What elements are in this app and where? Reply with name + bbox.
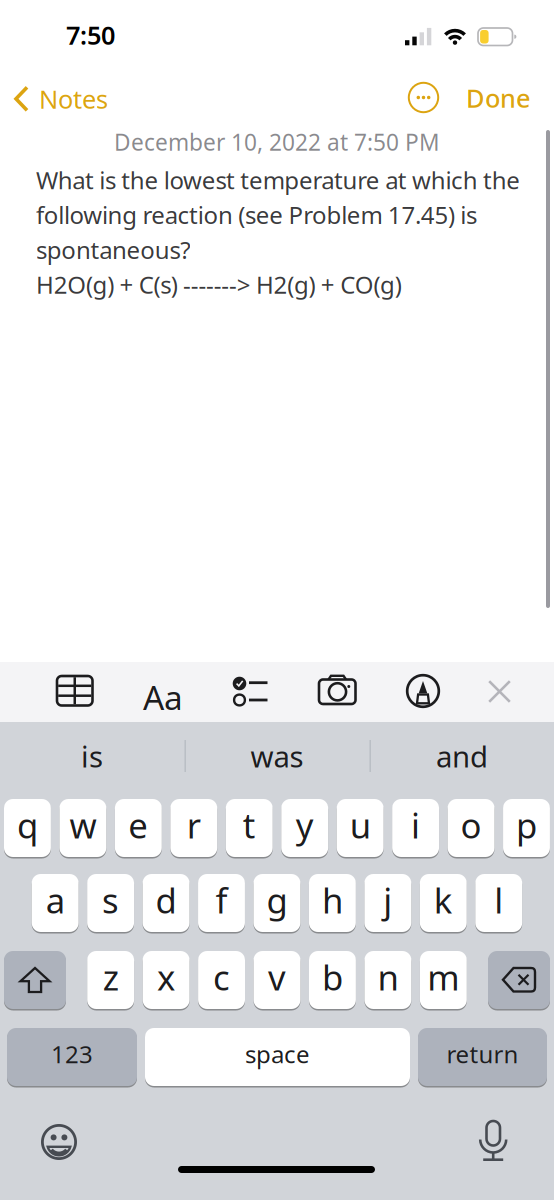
- button[interactable]: q: [4, 799, 51, 857]
- staticText: What is the lowest temperature at which …: [36, 164, 520, 196]
- staticText: p: [516, 802, 537, 848]
- button[interactable]: Dictation: [480, 1121, 507, 1161]
- staticText: y: [296, 802, 314, 848]
- staticText: spontaneous?: [36, 234, 190, 266]
- staticText: c: [213, 954, 230, 1000]
- button[interactable]: x: [143, 951, 190, 1009]
- button[interactable]: i: [392, 799, 439, 857]
- staticText: r: [187, 802, 201, 848]
- button[interactable]: l: [475, 874, 522, 932]
- button[interactable]: c: [198, 951, 245, 1009]
- staticText: k: [434, 877, 453, 923]
- button[interactable]: s: [87, 874, 134, 932]
- staticText: December 10, 2022 at 7:50 PM: [114, 127, 440, 157]
- button[interactable]: Insert table: [57, 676, 92, 705]
- button[interactable]: return: [418, 1028, 547, 1086]
- staticText: f: [215, 877, 227, 923]
- button[interactable]: More: [406, 80, 441, 115]
- button[interactable]: Shift: [4, 951, 66, 1009]
- button[interactable]: e: [115, 799, 162, 857]
- staticText: e: [128, 802, 148, 848]
- button[interactable]: u: [337, 799, 384, 857]
- staticText: Done: [466, 81, 531, 115]
- staticText: j: [383, 877, 392, 923]
- button[interactable]: o: [448, 799, 494, 857]
- button[interactable]: space: [145, 1028, 410, 1086]
- button[interactable]: a: [32, 874, 79, 932]
- button[interactable]: is: [2, 722, 182, 790]
- button[interactable]: r: [170, 799, 217, 857]
- button[interactable]: Dismiss keyboard: [488, 680, 511, 703]
- button[interactable]: Format: [143, 675, 183, 719]
- staticText: was: [250, 736, 303, 775]
- staticText: l: [494, 877, 503, 923]
- staticText: z: [103, 954, 119, 1000]
- button[interactable]: m: [420, 951, 467, 1009]
- button[interactable]: was: [187, 722, 367, 790]
- button[interactable]: 123: [7, 1028, 137, 1086]
- staticText: h: [322, 877, 343, 923]
- staticText: d: [155, 877, 176, 923]
- staticText: and: [436, 736, 488, 775]
- staticText: 7:50: [66, 18, 115, 52]
- staticText: m: [427, 954, 459, 1000]
- button[interactable]: Emoji: [41, 1124, 77, 1160]
- button[interactable]: w: [59, 799, 106, 857]
- button[interactable]: g: [253, 874, 300, 932]
- button[interactable]: b: [309, 951, 356, 1009]
- staticText: v: [268, 954, 286, 1000]
- staticText: i: [411, 802, 420, 848]
- button[interactable]: Delete: [488, 951, 550, 1009]
- button[interactable]: d: [143, 874, 189, 932]
- button[interactable]: Done: [466, 81, 531, 115]
- button[interactable]: h: [309, 874, 356, 932]
- button[interactable]: y: [281, 799, 328, 857]
- button[interactable]: j: [364, 874, 411, 932]
- staticText: q: [17, 802, 38, 848]
- staticText: Aa: [143, 675, 183, 719]
- staticText: 123: [51, 1038, 93, 1070]
- staticText: x: [157, 954, 175, 1000]
- button[interactable]: v: [254, 951, 300, 1009]
- staticText: H2O(g) + C(s) -------> H2(g) + CO(g): [36, 269, 402, 300]
- button[interactable]: Markup: [405, 673, 440, 708]
- staticText: w: [69, 802, 96, 848]
- staticText: g: [266, 877, 287, 923]
- staticText: b: [322, 954, 343, 1000]
- button[interactable]: Camera: [319, 675, 355, 704]
- staticText: t: [243, 802, 256, 848]
- button[interactable]: Notes: [14, 82, 108, 116]
- staticText: o: [461, 802, 482, 848]
- button[interactable]: f: [198, 874, 245, 932]
- button[interactable]: Checklist: [232, 676, 267, 707]
- staticText: Notes: [39, 82, 108, 116]
- staticText: following reaction (see Problem 17.45) i…: [36, 199, 477, 231]
- staticText: is: [81, 736, 103, 775]
- staticText: s: [102, 877, 119, 923]
- button[interactable]: p: [503, 799, 550, 857]
- staticText: a: [46, 877, 65, 923]
- button[interactable]: k: [420, 874, 467, 932]
- staticText: return: [446, 1038, 518, 1070]
- staticText: space: [245, 1038, 310, 1070]
- staticText: n: [377, 954, 398, 1000]
- button[interactable]: and: [372, 722, 552, 790]
- button[interactable]: z: [87, 951, 134, 1009]
- button[interactable]: t: [226, 799, 273, 857]
- staticText: u: [350, 802, 371, 848]
- button[interactable]: n: [364, 951, 411, 1009]
